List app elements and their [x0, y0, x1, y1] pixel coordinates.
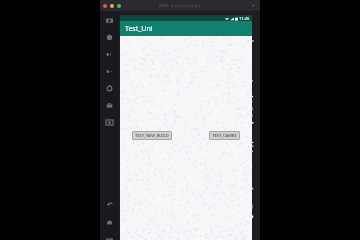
button[interactable]: Volume up: [104, 49, 115, 60]
staticText: nox: [159, 2, 169, 9]
button[interactable]: Home: [104, 217, 115, 228]
button[interactable]: Settings: [104, 117, 115, 128]
staticText: TEST_CAMRE: [212, 133, 237, 138]
button[interactable]: Volume down: [104, 66, 115, 77]
staticText: 11:26: [239, 16, 250, 21]
button[interactable]: Power: [104, 32, 115, 43]
button[interactable]: Back: [104, 199, 115, 210]
button[interactable]: Recents: [104, 235, 115, 240]
button[interactable]: Screenshot: [104, 15, 115, 26]
staticText: TEST_NEW_BUILD: [135, 133, 169, 138]
button[interactable]: TEST_NEW_BUILD: [132, 131, 172, 140]
button[interactable]: TEST_CAMRE: [209, 131, 240, 140]
button[interactable]: Install APK: [104, 100, 115, 111]
button[interactable]: Rotate: [104, 83, 115, 94]
staticText: Test_Uni: [125, 24, 153, 34]
